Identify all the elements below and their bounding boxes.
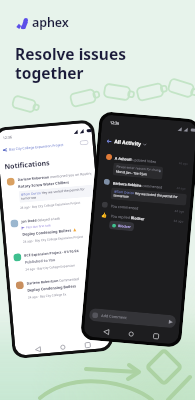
staticText: 24 ago · Bay City College Ex bbox=[28, 292, 67, 300]
staticText: 24 ago · Bay City College Expansion Proj… bbox=[23, 234, 84, 244]
other: Home bbox=[128, 331, 134, 337]
other: Back bbox=[35, 347, 41, 352]
staticText: Jon Dodd delayed a task bbox=[21, 215, 60, 224]
staticText: aphex bbox=[32, 14, 69, 31]
staticText: Barbara Robbins commented bbox=[113, 180, 163, 190]
other: aphex logo bbox=[15, 16, 28, 29]
button[interactable]: Jon Dodd delayed a task bbox=[4, 207, 101, 249]
staticText: 24 ago · Bay City College Expansion Proj… bbox=[20, 201, 81, 210]
other: Recents bbox=[85, 342, 90, 348]
staticText: A Ashoufi updated Video bbox=[115, 155, 157, 164]
button[interactable]: A Ashoufi updated Video bbox=[97, 149, 194, 182]
staticText: 24 ago · Bay City College Expansion bbox=[25, 263, 75, 272]
other: Back bbox=[106, 139, 112, 144]
other: Recents bbox=[153, 333, 159, 339]
staticText: Notifications bbox=[4, 158, 51, 172]
staticText: Mon 8 Jan - Tue 9 Jan bbox=[116, 170, 148, 176]
button[interactable]: Back bbox=[106, 138, 189, 152]
other: Home bbox=[60, 344, 66, 350]
staticText: Rotary Screw Water Chillers bbox=[18, 180, 69, 189]
staticText: Please enter reason for change bbox=[116, 165, 160, 172]
staticText: 4d ago bbox=[176, 186, 187, 191]
button[interactable] bbox=[79, 140, 89, 145]
staticText: You commented bbox=[111, 203, 139, 211]
staticText: BCE Expansion Project - 01/10/24 bbox=[24, 248, 79, 258]
staticText: 12:36 bbox=[110, 120, 120, 126]
staticText: Deploy Condensing Boilers bbox=[27, 283, 76, 293]
other: Back bbox=[104, 329, 109, 335]
button[interactable]: Add Comment bbox=[89, 308, 176, 328]
staticText: You replied bbox=[111, 213, 131, 220]
staticText: 4d ago bbox=[179, 161, 189, 166]
button[interactable]: BCE Expansion Project - 01/10/24 bbox=[7, 241, 104, 277]
staticText: Add Comment bbox=[101, 313, 127, 320]
staticText: 4d ago bbox=[173, 219, 184, 224]
staticText: Bay City College Expansion Project bbox=[9, 142, 64, 152]
staticText: 12:36 bbox=[3, 134, 13, 140]
staticText: Blocker bbox=[131, 215, 145, 221]
staticText: 4d ago bbox=[174, 209, 185, 214]
staticText: Published to You bbox=[25, 257, 56, 265]
staticText: Blocker bbox=[118, 223, 131, 229]
button[interactable]: Barbara Robbins commented bbox=[95, 174, 192, 206]
button[interactable]: aphex logo bbox=[15, 14, 69, 31]
other: Back bbox=[3, 148, 7, 152]
staticText: 👍 bbox=[101, 211, 108, 218]
other: Send bbox=[169, 320, 173, 324]
staticText: Resolve issues together bbox=[15, 43, 126, 83]
staticText: @Tom Dorizo Hey we sorted the permit for… bbox=[21, 187, 91, 201]
staticText: Darlene Robertson Commented bbox=[26, 276, 80, 286]
staticText: @Tom Dorizo Hey we sorted the permit for… bbox=[113, 189, 184, 204]
button[interactable]: Darlene Robertson mentioned you on Routi… bbox=[0, 165, 98, 215]
staticText: All Activity bbox=[114, 138, 142, 148]
staticText: Past due first task bbox=[26, 223, 52, 230]
staticText: Deploy Condensing Boilers bbox=[22, 228, 71, 237]
button[interactable]: Darlene Robertson Commented bbox=[9, 269, 106, 305]
staticText: Darlene Robertson mentioned you on Routi… bbox=[17, 171, 92, 182]
